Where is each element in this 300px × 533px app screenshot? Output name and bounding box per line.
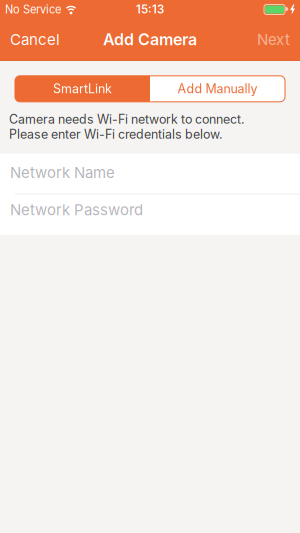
staticText: 15:13 [136, 3, 164, 16]
staticText: Network Password [10, 201, 143, 219]
button[interactable]: SmartLink [15, 76, 150, 102]
staticText: Camera needs Wi-Fi network to connect. [9, 112, 245, 127]
button[interactable]: Add Manually [150, 76, 285, 102]
staticText: Network Name [10, 163, 115, 182]
staticText: No Service [5, 3, 61, 16]
button[interactable]: Network Name [0, 154, 300, 193]
button[interactable]: Network Password [0, 195, 300, 235]
staticText: SmartLink [53, 81, 112, 96]
button[interactable]: Cancel [10, 30, 60, 49]
staticText: Please enter Wi-Fi credentials below. [9, 127, 223, 142]
staticText: Next [257, 30, 290, 49]
staticText: Add Manually [177, 81, 257, 96]
staticText: Add Camera [103, 30, 197, 49]
button[interactable]: Next [257, 30, 290, 49]
staticText: Cancel [10, 30, 60, 49]
